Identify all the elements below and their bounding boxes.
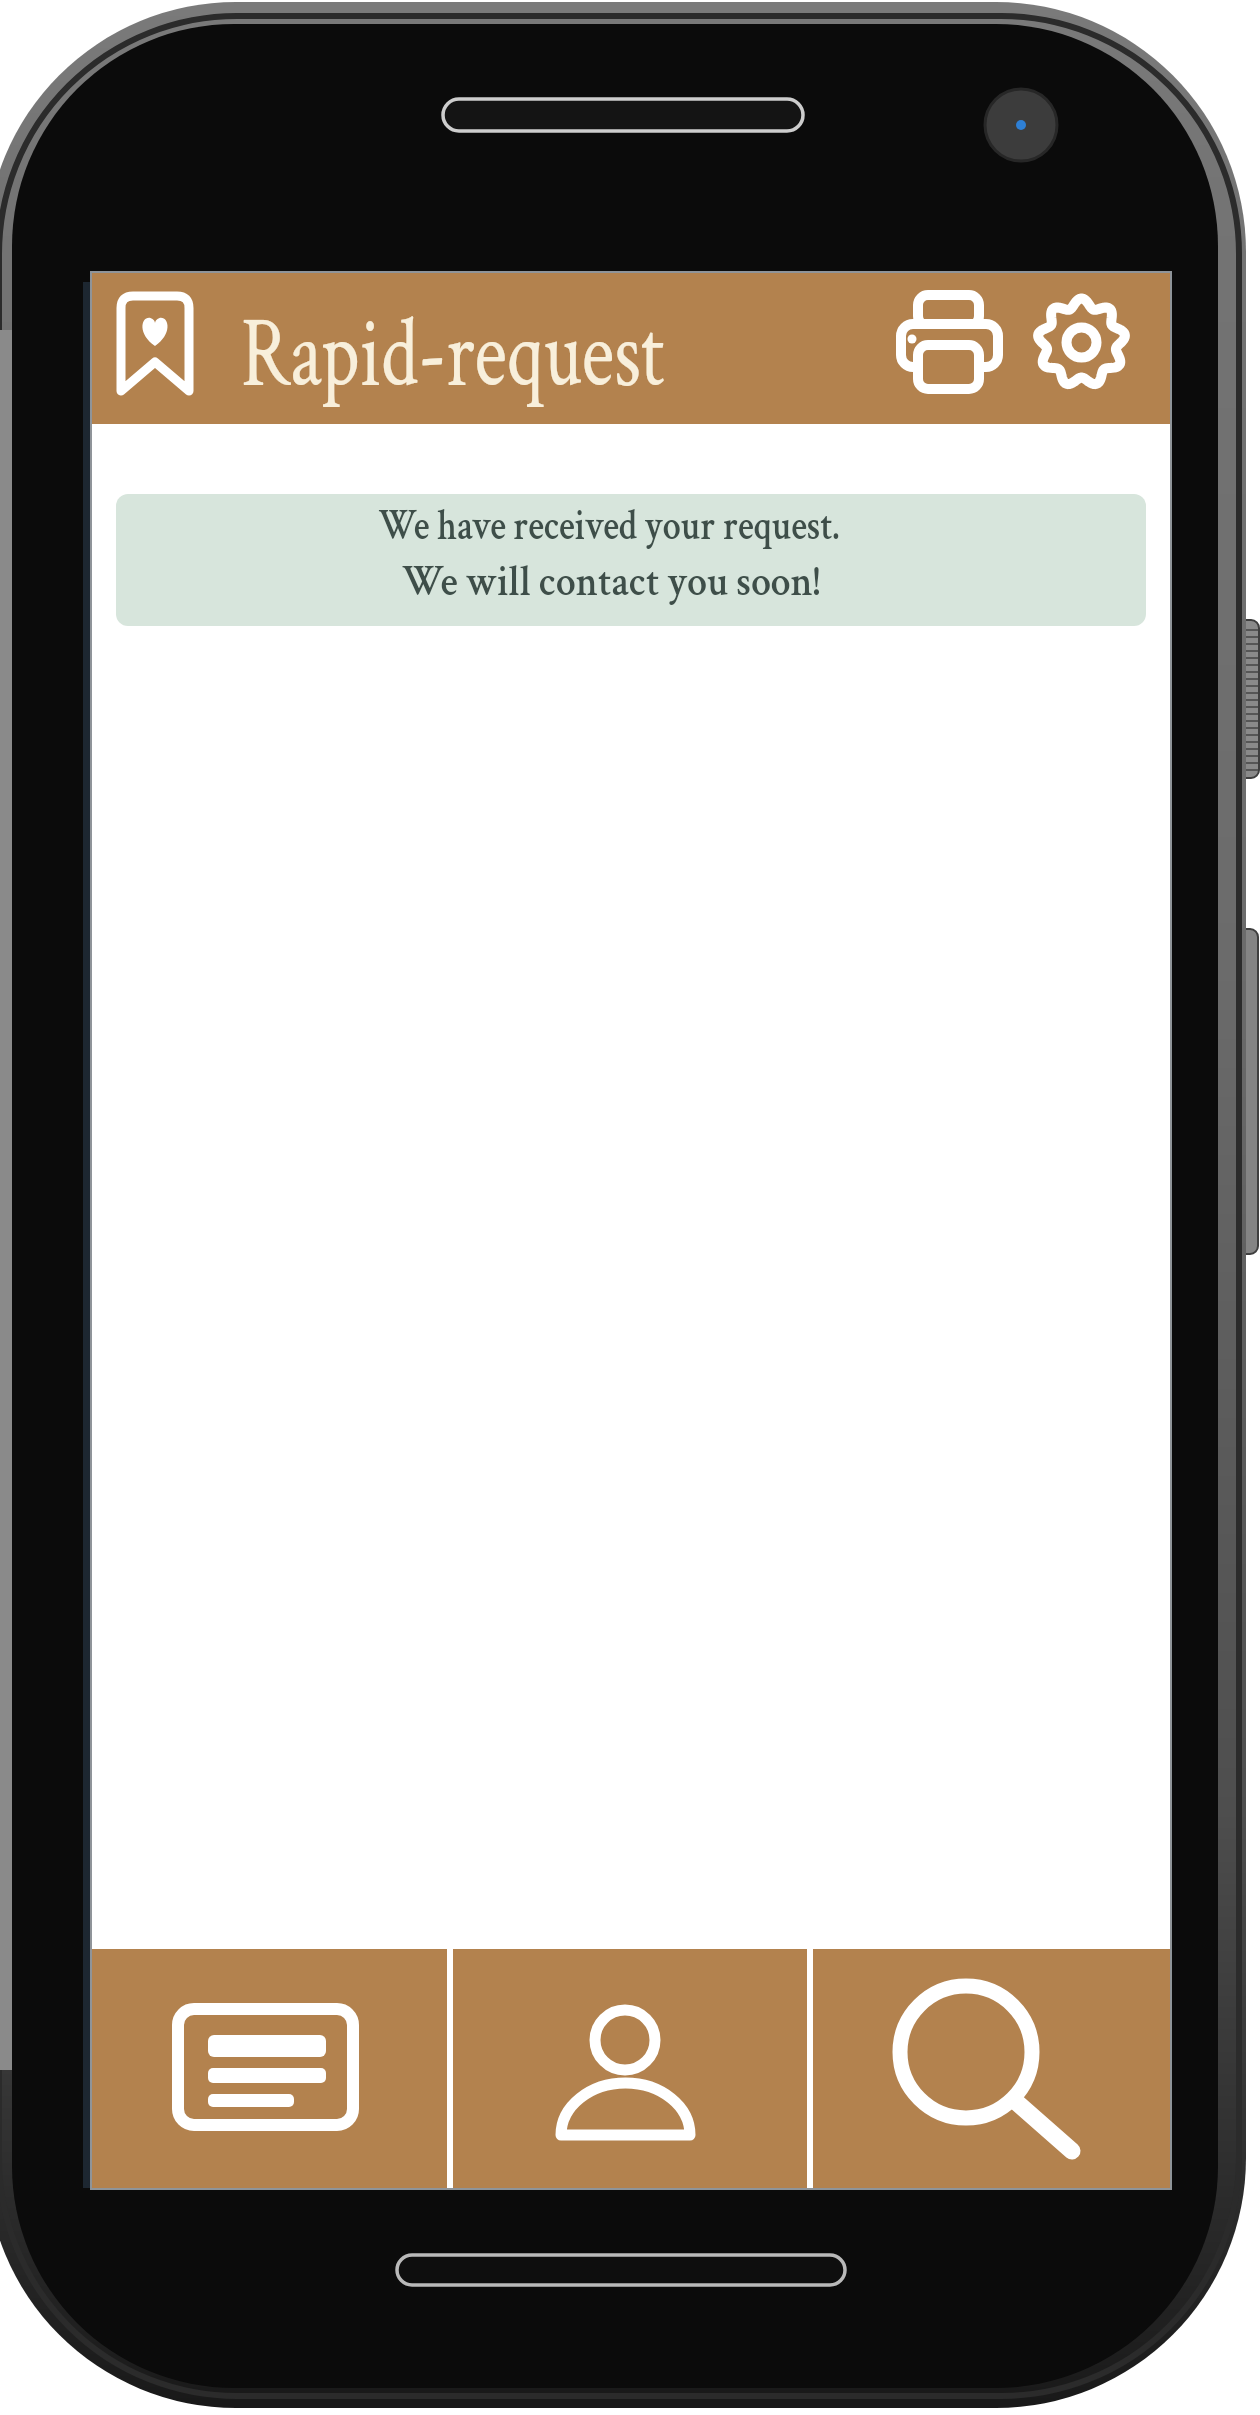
staticText: We will contact you soon! — [147, 553, 1074, 610]
button[interactable] — [1025, 281, 1138, 404]
staticText: We have received your request. — [185, 497, 1033, 554]
button[interactable] — [92, 1949, 447, 2188]
button[interactable] — [888, 279, 1011, 406]
button[interactable] — [453, 1949, 807, 2188]
button[interactable] — [813, 1949, 1170, 2188]
staticText: Rapid-request — [241, 289, 664, 420]
